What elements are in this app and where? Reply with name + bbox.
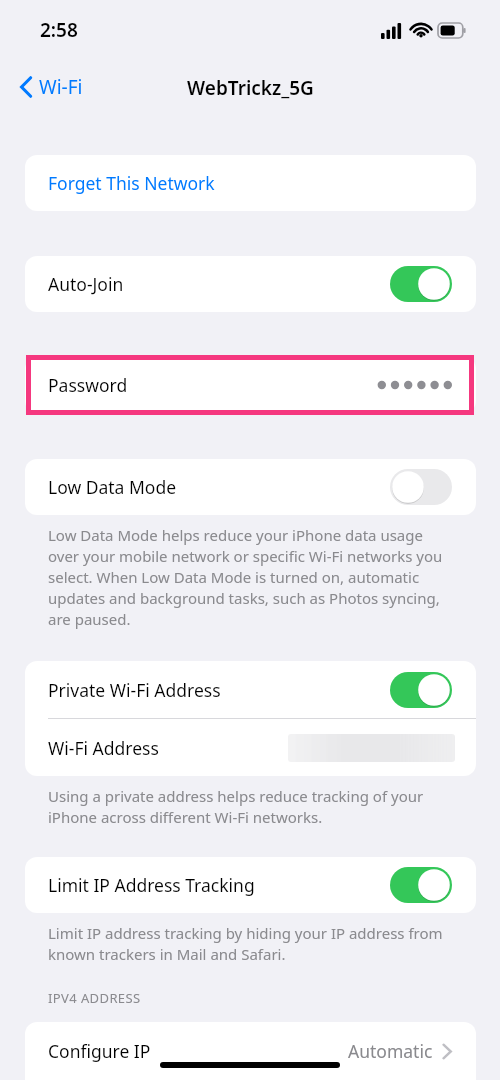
button[interactable]: Configure IP xyxy=(25,1022,476,1080)
staticText: 2:58 xyxy=(40,17,78,43)
button[interactable]: Private Wi-Fi Address xyxy=(25,661,476,718)
button[interactable]: Auto-Join xyxy=(25,256,476,312)
staticText: Auto-Join xyxy=(48,272,124,296)
button[interactable]: Toggle on xyxy=(390,672,452,708)
staticText: Password xyxy=(48,373,128,397)
button[interactable]: Back xyxy=(16,70,87,104)
staticText: Forget This Network xyxy=(48,171,215,195)
staticText: Automatic xyxy=(348,1039,433,1063)
other: Back xyxy=(20,76,33,98)
staticText: Wi-Fi xyxy=(39,74,83,100)
staticText: Private Wi-Fi Address xyxy=(48,678,221,702)
staticText: Limit IP address tracking by hiding your… xyxy=(48,923,448,965)
button[interactable]: Wi-Fi Address xyxy=(25,719,476,776)
staticText: Using a private address helps reduce tra… xyxy=(48,786,448,828)
button[interactable]: Low Data Mode xyxy=(25,459,476,515)
staticText: Low Data Mode xyxy=(48,475,177,499)
button[interactable]: Limit IP Address Tracking xyxy=(25,857,476,913)
button[interactable]: Toggle on xyxy=(390,867,452,903)
staticText: IPV4 ADDRESS xyxy=(48,989,141,1007)
button[interactable]: Toggle on xyxy=(390,266,452,302)
staticText: Configure IP xyxy=(48,1039,151,1063)
button[interactable]: Forget This Network xyxy=(25,155,476,211)
button[interactable]: Toggle off xyxy=(390,469,452,505)
staticText: Limit IP Address Tracking xyxy=(48,873,255,897)
staticText: Low Data Mode helps reduce your iPhone d… xyxy=(48,525,448,630)
staticText: Wi-Fi Address xyxy=(48,736,159,760)
staticText: WebTrickz_5G xyxy=(187,75,314,101)
button[interactable]: Password xyxy=(25,357,476,413)
